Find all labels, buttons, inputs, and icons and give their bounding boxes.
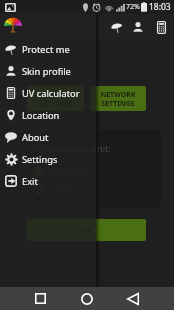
- button[interactable]: UV calculator: [0, 82, 96, 104]
- button[interactable]: OK: [27, 219, 146, 241]
- button[interactable]: Celsius: [33, 182, 79, 194]
- button[interactable]: Home: [67, 287, 107, 310]
- button[interactable]: Recents: [20, 287, 60, 310]
- button[interactable]: NETWORK SETTINGS: [90, 86, 146, 111]
- button[interactable]: NETWORK SETTINGS: [27, 86, 84, 111]
- button[interactable]: Back: [113, 287, 153, 310]
- staticText: Settings: [22, 153, 58, 166]
- staticText: Protect me: [22, 43, 70, 56]
- staticText: OK: [80, 224, 93, 236]
- staticText: About: [22, 131, 49, 144]
- staticText: Skin profile: [22, 65, 71, 78]
- button[interactable]: Location: [0, 104, 96, 126]
- button[interactable]: About: [0, 126, 96, 148]
- staticText: NETWORK SETTINGS: [38, 90, 74, 108]
- button[interactable]: Skin profile: [127, 14, 148, 40]
- staticText: 72%: [126, 2, 140, 12]
- staticText: Exit: [22, 175, 38, 188]
- staticText: Temperature unit:: [31, 142, 112, 155]
- button[interactable]: Protect me: [106, 14, 127, 40]
- staticText: UV calculator: [22, 87, 80, 100]
- button[interactable]: Settings: [0, 148, 96, 170]
- button[interactable]: Skin profile: [0, 60, 96, 82]
- button[interactable]: Protect me: [0, 38, 96, 60]
- staticText: Location: [22, 109, 60, 122]
- staticText: 18:03: [149, 1, 171, 13]
- button[interactable]: UV calculator: [148, 14, 174, 40]
- staticText: NETWORK SETTINGS: [100, 90, 136, 108]
- button[interactable]: Exit: [0, 170, 96, 192]
